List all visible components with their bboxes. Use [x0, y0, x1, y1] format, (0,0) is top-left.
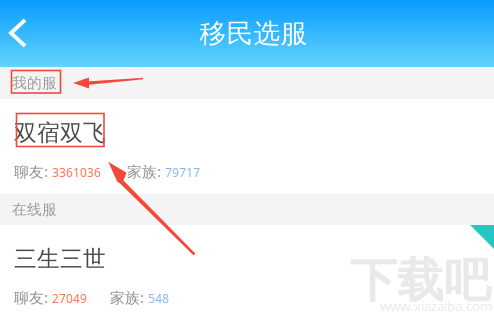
staticText: 79717 — [165, 164, 200, 180]
staticText: 三生三世 — [14, 245, 106, 273]
staticText: 聊友 — [14, 289, 44, 307]
staticText: 我的服 — [12, 74, 57, 92]
staticText: 移民选服 — [199, 17, 307, 50]
staticText: : — [157, 161, 161, 181]
button[interactable]: Back — [0, 0, 46, 67]
staticText: 27049 — [52, 290, 87, 306]
staticText: 聊友 — [14, 163, 44, 181]
staticText: 家族 — [110, 289, 140, 307]
staticText: 下载吧 — [350, 252, 491, 309]
staticText: 3361036 — [52, 164, 101, 180]
button[interactable]: 三生三世 — [0, 225, 494, 315]
staticText: www.xiazaiba.com — [380, 297, 492, 315]
staticText: 家族 — [127, 163, 157, 181]
staticText: 双宿双飞 — [14, 119, 106, 147]
button[interactable]: 双宿双飞 — [0, 99, 494, 194]
staticText: : — [44, 161, 48, 181]
staticText: 548 — [148, 290, 169, 306]
staticText: : — [44, 287, 48, 307]
staticText: 在线服 — [12, 200, 57, 218]
staticText: : — [140, 287, 144, 307]
